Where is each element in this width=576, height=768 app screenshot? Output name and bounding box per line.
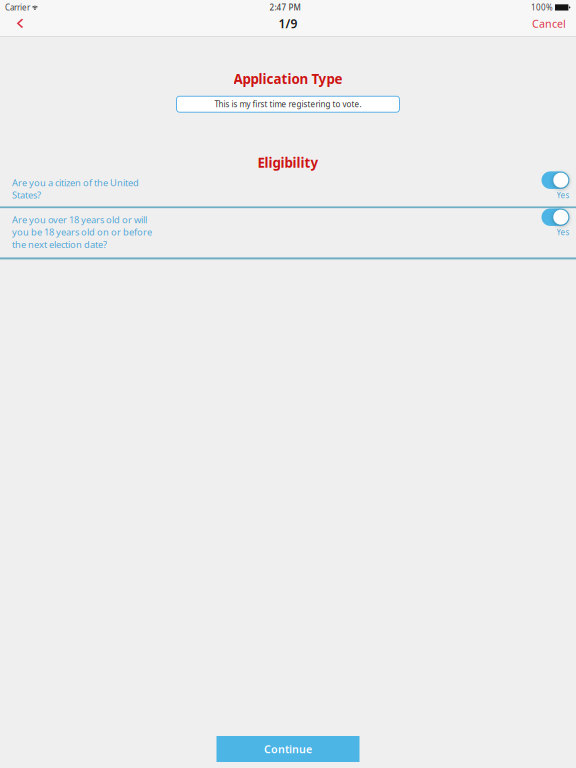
staticText: Are you over 18 years old or will you be… [12,213,152,251]
staticText: Yes [556,227,569,237]
staticText: This is my first time registering to vot… [214,99,361,109]
button[interactable]: Cancel [526,15,572,32]
staticText: 1/9 [278,15,297,31]
button[interactable]: Continue [216,736,359,762]
staticText: Cancel [532,16,566,31]
staticText: 2:47 PM [269,2,300,13]
staticText: 100% [531,2,553,13]
button[interactable]: Back [4,15,36,32]
staticText: Application Type [233,70,342,88]
staticText: Continue [264,742,312,756]
button[interactable]: Are you over 18 years old or will you be… [0,208,576,259]
staticText: Yes [556,190,569,200]
staticText: Carrier [5,2,30,13]
button[interactable]: Are you a citizen of the United States? [0,171,576,208]
staticText: Eligibility [257,154,318,171]
staticText: Are you a citizen of the United States? [12,176,139,201]
